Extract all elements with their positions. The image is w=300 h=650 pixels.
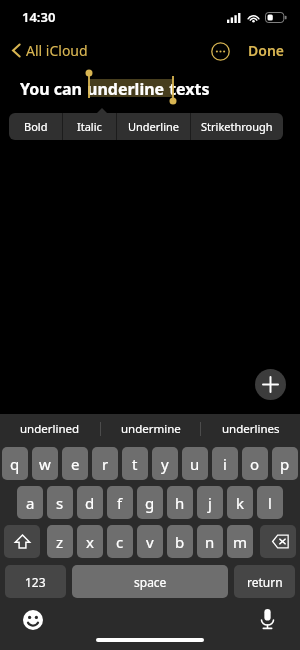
button[interactable]: Add	[255, 369, 286, 400]
staticText: j	[208, 493, 212, 513]
staticText: p	[280, 454, 290, 474]
staticText: Italic	[77, 119, 102, 134]
button[interactable]: return	[234, 565, 295, 598]
staticText: z	[56, 532, 64, 552]
staticText: f	[117, 493, 123, 513]
button[interactable]: z	[47, 525, 73, 558]
staticText: t	[132, 454, 138, 474]
button[interactable]: j	[197, 486, 223, 519]
staticText: Underline	[128, 119, 180, 134]
staticText: x	[86, 532, 94, 552]
button[interactable]: Italic	[63, 113, 116, 140]
button[interactable]: f	[107, 486, 133, 519]
button[interactable]: Emoji	[20, 607, 46, 633]
button[interactable]: g	[137, 486, 163, 519]
button[interactable]: n	[197, 525, 223, 558]
staticText: Strikethrough	[201, 119, 273, 134]
staticText: texts	[165, 78, 210, 100]
button[interactable]: underlined	[0, 414, 100, 444]
staticText: Bold	[24, 119, 48, 134]
button[interactable]: i	[212, 447, 238, 480]
staticText: e	[71, 454, 80, 474]
staticText: b	[175, 532, 185, 552]
staticText: h	[175, 493, 185, 513]
button[interactable]: underlines	[201, 414, 300, 444]
staticText: Done	[248, 41, 285, 60]
staticText: c	[116, 532, 124, 552]
button[interactable]: r	[92, 447, 118, 480]
button[interactable]: c	[107, 525, 133, 558]
button[interactable]: t	[122, 447, 148, 480]
button[interactable]: q	[2, 447, 28, 480]
staticText: s	[56, 493, 64, 513]
button[interactable]: a	[17, 486, 43, 519]
staticText: underlined	[20, 421, 80, 437]
button[interactable]: All iCloud	[8, 36, 92, 65]
staticText: 123	[25, 574, 46, 590]
button[interactable]: More options	[208, 39, 232, 63]
button[interactable]: p	[272, 447, 298, 480]
staticText: All iCloud	[26, 41, 88, 60]
staticText: d	[85, 493, 95, 513]
staticText: underline	[87, 78, 165, 100]
button[interactable]: l	[257, 486, 283, 519]
staticText: 14:30	[22, 8, 56, 26]
staticText: a	[26, 493, 35, 513]
button[interactable]: w	[32, 447, 58, 480]
staticText: r	[102, 454, 109, 474]
staticText: n	[205, 532, 215, 552]
staticText: undermine	[121, 421, 181, 437]
button[interactable]: Underline	[117, 113, 190, 140]
button[interactable]: x	[77, 525, 103, 558]
button[interactable]: Strikethrough	[191, 113, 283, 140]
staticText: space	[134, 574, 167, 590]
staticText: i	[223, 454, 227, 474]
button[interactable]: Done	[245, 36, 288, 65]
staticText: w	[39, 454, 51, 474]
staticText: You can	[20, 78, 87, 100]
button[interactable]: Bold	[9, 113, 62, 140]
staticText: v	[146, 532, 154, 552]
staticText: return	[247, 574, 283, 590]
staticText: k	[236, 493, 245, 513]
button[interactable]: o	[242, 447, 268, 480]
staticText: g	[145, 493, 155, 513]
staticText: underlines	[222, 421, 280, 437]
button[interactable]: y	[152, 447, 178, 480]
staticText: m	[233, 532, 248, 552]
button[interactable]: d	[77, 486, 103, 519]
button[interactable]: s	[47, 486, 73, 519]
button[interactable]: v	[137, 525, 163, 558]
button[interactable]: k	[227, 486, 253, 519]
button[interactable]: undermine	[101, 414, 200, 444]
button[interactable]: Dictation	[254, 606, 280, 632]
button[interactable]: Shift	[4, 525, 40, 558]
button[interactable]: b	[167, 525, 193, 558]
button[interactable]: 123	[5, 565, 66, 598]
staticText: l	[268, 493, 272, 513]
button[interactable]: space	[72, 565, 228, 598]
staticText: u	[190, 454, 200, 474]
staticText: o	[250, 454, 260, 474]
button[interactable]: h	[167, 486, 193, 519]
button[interactable]: m	[227, 525, 253, 558]
staticText: q	[10, 454, 20, 474]
button[interactable]: u	[182, 447, 208, 480]
button[interactable]: e	[62, 447, 88, 480]
button[interactable]: Backspace	[260, 525, 296, 558]
staticText: y	[161, 454, 169, 474]
